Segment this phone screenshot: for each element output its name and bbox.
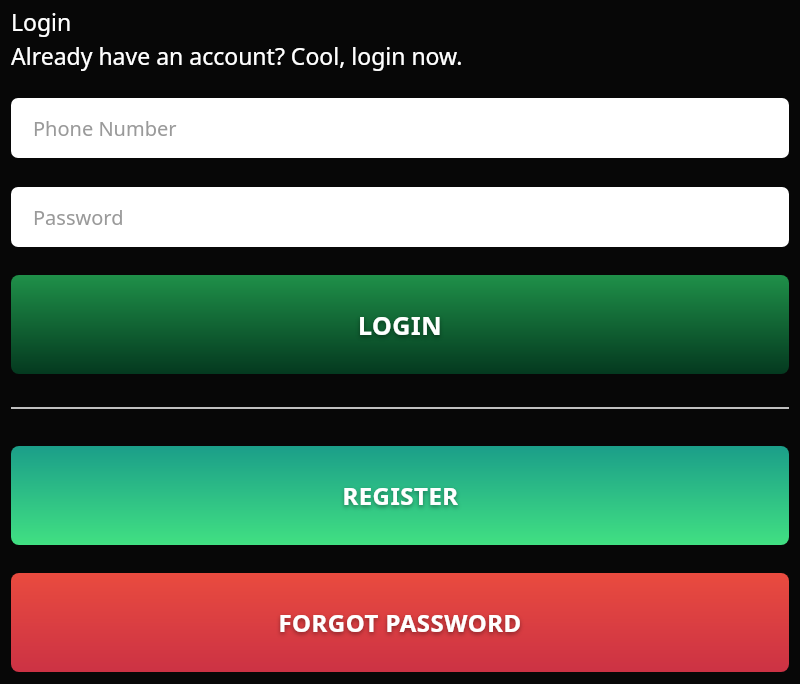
staticText: REGISTER [342, 479, 459, 512]
staticText: Phone Number [33, 115, 177, 142]
staticText: FORGOT PASSWORD [278, 606, 522, 639]
staticText: LOGIN [358, 308, 442, 342]
button[interactable]: Phone Number [11, 98, 789, 158]
staticText: Login [11, 6, 72, 37]
staticText: Password [33, 204, 124, 231]
button[interactable]: Password [11, 187, 789, 247]
button[interactable]: LOGIN [11, 275, 789, 374]
staticText: Already have an account? Cool, login now… [11, 40, 463, 71]
button[interactable]: FORGOT PASSWORD [11, 573, 789, 672]
button[interactable]: REGISTER [11, 446, 789, 545]
